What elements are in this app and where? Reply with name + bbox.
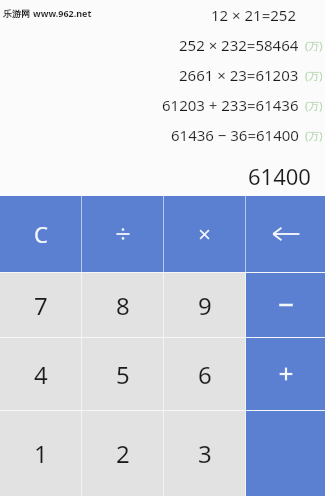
staticText: 61203 + 233=61436 — [162, 95, 299, 115]
staticText: 1 — [34, 437, 48, 470]
staticText: (万) — [305, 98, 323, 113]
staticText: 9 — [198, 289, 212, 322]
button[interactable]: 2 — [82, 411, 163, 496]
staticText: (万) — [305, 38, 323, 53]
button[interactable]: Minus — [246, 273, 325, 337]
staticText: 6 — [198, 358, 212, 391]
button[interactable]: 9 — [164, 273, 245, 337]
button[interactable]: C — [0, 196, 81, 272]
staticText: 61436 − 36=61400 — [171, 125, 299, 145]
staticText: 乐游网 — [3, 8, 30, 19]
staticText: 7 — [34, 289, 48, 322]
staticText: C — [34, 219, 48, 249]
staticText: 61400 — [248, 161, 311, 191]
staticText: 12 × 21=252 — [211, 5, 297, 25]
button[interactable]: Plus — [246, 338, 325, 410]
staticText: (万) — [305, 68, 323, 83]
staticText: 4 — [34, 358, 48, 391]
button[interactable]: 1 — [0, 411, 81, 496]
button[interactable]: 7 — [0, 273, 81, 337]
staticText: 2661 × 23=61203 — [179, 65, 299, 85]
button[interactable]: 3 — [164, 411, 245, 496]
button[interactable]: 4 — [0, 338, 81, 410]
button[interactable]: Multiply — [164, 196, 245, 272]
staticText: (万) — [305, 128, 323, 143]
button[interactable]: 6 — [164, 338, 245, 410]
staticText: 252 × 232=58464 — [179, 35, 299, 55]
button[interactable]: Divide — [82, 196, 163, 272]
staticText: 5 — [116, 358, 130, 391]
button[interactable]: 8 — [82, 273, 163, 337]
button[interactable]: 5 — [82, 338, 163, 410]
staticText: 3 — [198, 437, 212, 470]
staticText: 8 — [116, 289, 130, 322]
staticText: 2 — [116, 437, 130, 470]
button[interactable]: Backspace — [246, 196, 325, 272]
staticText: www.962.net — [33, 7, 92, 19]
